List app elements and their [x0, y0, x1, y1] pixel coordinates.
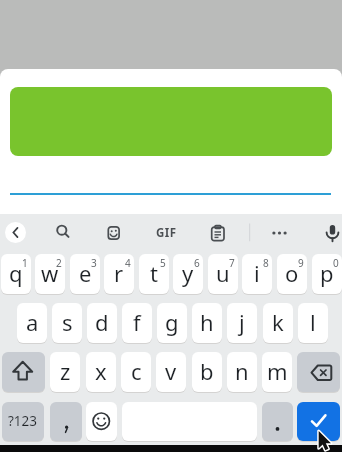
button[interactable]: m [262, 352, 292, 392]
staticText: h [200, 307, 214, 337]
button[interactable]: n [227, 352, 257, 392]
button[interactable] [10, 87, 332, 156]
staticText: ?123 [8, 412, 38, 430]
staticText: j [239, 307, 245, 337]
button[interactable]: c [121, 352, 151, 392]
staticText: 5 [160, 256, 166, 270]
button[interactable]: ?123 [2, 402, 44, 441]
staticText: y [182, 258, 194, 288]
button[interactable]: r [104, 254, 134, 294]
button[interactable]: a [17, 303, 47, 343]
staticText: b [200, 356, 214, 386]
staticText: p [320, 258, 334, 288]
button[interactable]: x [86, 352, 116, 392]
staticText: l [310, 307, 316, 337]
staticText: n [235, 356, 249, 386]
button[interactable]: v [156, 352, 186, 392]
button[interactable] [50, 402, 82, 441]
staticText: 7 [229, 256, 235, 270]
staticText: s [62, 307, 73, 337]
button[interactable]: l [298, 303, 328, 343]
button[interactable]: w [35, 254, 65, 294]
button[interactable]: s [52, 303, 82, 343]
button[interactable]: g [157, 303, 187, 343]
staticText: 9 [298, 256, 304, 270]
button[interactable]: p [312, 254, 342, 294]
staticText: v [165, 356, 177, 386]
button[interactable] [297, 402, 340, 441]
staticText: u [216, 258, 230, 288]
button[interactable]: u [208, 254, 238, 294]
button[interactable]: d [87, 303, 117, 343]
button[interactable]: b [192, 352, 222, 392]
button[interactable] [297, 352, 340, 392]
button[interactable]: o [277, 254, 307, 294]
staticText: 0 [333, 256, 339, 270]
staticText: d [95, 307, 109, 337]
button[interactable] [86, 402, 117, 441]
staticText: m [267, 356, 288, 386]
staticText: 4 [125, 256, 131, 270]
staticText: a [26, 307, 39, 337]
staticText: i [254, 258, 260, 288]
button[interactable]: z [50, 352, 80, 392]
staticText: r [114, 258, 124, 288]
button[interactable] [5, 222, 26, 243]
staticText: 8 [263, 256, 269, 270]
button[interactable]: h [192, 303, 222, 343]
staticText: 3 [91, 256, 97, 270]
staticText: f [133, 307, 141, 337]
button[interactable]: j [227, 303, 257, 343]
staticText: z [60, 356, 71, 386]
button[interactable]: f [122, 303, 152, 343]
staticText: c [131, 356, 142, 386]
button[interactable]: GIF [156, 225, 177, 241]
staticText: 2 [56, 256, 62, 270]
button[interactable] [2, 352, 45, 392]
staticText: k [272, 307, 284, 337]
staticText: w [41, 258, 59, 288]
staticText: x [95, 356, 107, 386]
staticText: 1 [22, 256, 28, 270]
staticText: t [150, 258, 158, 288]
button[interactable]: e [70, 254, 100, 294]
staticText: g [165, 307, 179, 337]
button[interactable] [262, 402, 293, 441]
staticText: e [79, 258, 92, 288]
button[interactable]: i [242, 254, 272, 294]
button[interactable]: y [173, 254, 203, 294]
staticText: q [9, 258, 23, 288]
staticText: 6 [194, 256, 200, 270]
button[interactable]: k [263, 303, 293, 343]
staticText: o [285, 258, 299, 288]
button[interactable]: t [139, 254, 169, 294]
button[interactable]: q [1, 254, 31, 294]
